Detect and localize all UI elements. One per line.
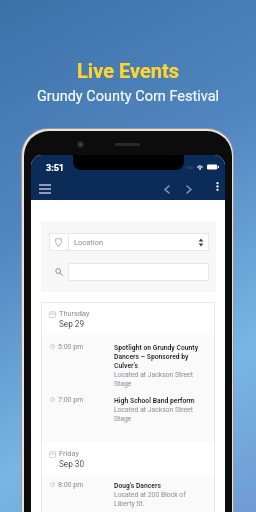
- button[interactable]: Previous: [158, 180, 176, 198]
- button[interactable]: Open navigation menu: [34, 178, 56, 200]
- button[interactable]: 8:00 pm: [41, 475, 215, 512]
- staticText: High School Band perform Located at Jack…: [114, 397, 195, 423]
- staticText: 3:51: [46, 163, 65, 174]
- button[interactable]: 7:00 pm: [41, 388, 215, 442]
- button[interactable]: Location: [49, 233, 209, 251]
- staticText: Friday: [59, 449, 79, 458]
- staticText: Sep 29: [59, 319, 85, 329]
- staticText: Doug's Dancers Located at 200 Block of L…: [114, 482, 186, 508]
- button[interactable]: Next: [180, 180, 198, 198]
- button[interactable]: More options: [209, 178, 225, 194]
- staticText: Live Events: [0, 59, 256, 82]
- button[interactable]: [49, 263, 209, 281]
- button[interactable]: 5:00 pm: [41, 335, 215, 388]
- staticText: 5:00 pm: [58, 343, 114, 351]
- staticText: 7:00 pm: [58, 396, 114, 404]
- staticText: Sep 30: [59, 459, 85, 469]
- staticText: Grundy County Corn Festival: [0, 88, 256, 105]
- staticText: Spotlight on Grundy County Dancers – Spo…: [114, 344, 199, 388]
- staticText: Thursday: [59, 309, 90, 318]
- staticText: 8:00 pm: [58, 481, 114, 489]
- staticText: Location: [74, 238, 104, 247]
